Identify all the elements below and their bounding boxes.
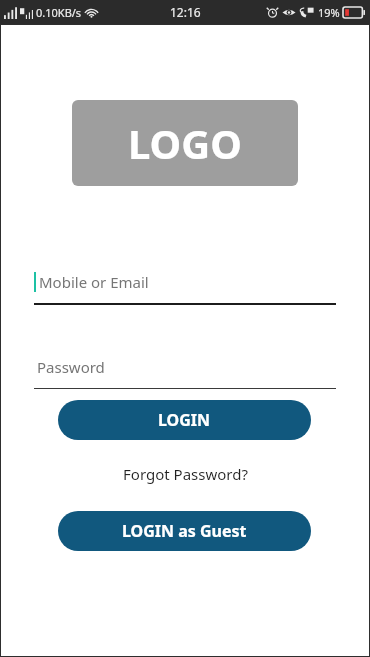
- button[interactable]: Forgot Password?: [105, 461, 265, 487]
- staticText: Forgot Password?: [123, 464, 248, 484]
- button[interactable]: LOGIN as Guest: [58, 511, 311, 551]
- button[interactable]: Password: [34, 351, 336, 389]
- staticText: LOGIN: [158, 409, 211, 431]
- staticText: Mobile or Email: [39, 272, 149, 292]
- staticText: LOGIN as Guest: [122, 520, 247, 542]
- staticText: LOGO: [128, 116, 242, 170]
- button[interactable]: Mobile or Email: [34, 267, 336, 305]
- staticText: Password: [37, 357, 105, 377]
- staticText: 0.10KB/s: [36, 5, 82, 20]
- staticText: 19%: [318, 5, 340, 20]
- staticText: 12:16: [170, 4, 201, 20]
- button[interactable]: LOGIN: [58, 400, 311, 440]
- button[interactable]: LOGO: [72, 100, 298, 186]
